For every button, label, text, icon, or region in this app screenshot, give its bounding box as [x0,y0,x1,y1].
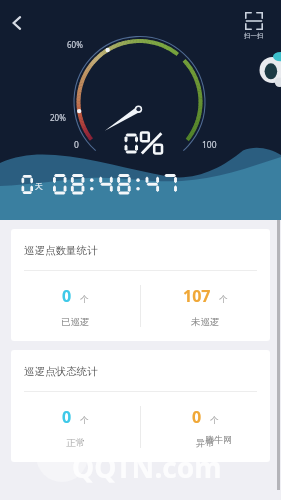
staticText: 扫一扫 [244,32,264,40]
staticText: 20% [50,112,66,123]
staticText: 60% [67,39,83,50]
staticText: 100 [202,139,217,151]
staticText: 0 [192,406,202,428]
staticText: 正常 [66,437,85,449]
staticText: 个 [80,294,89,305]
staticText: 已巡逻 [61,316,90,328]
button[interactable]: 巡逻点数量统计 [11,229,270,341]
staticText: 0 [62,285,72,307]
button[interactable]: 扫一扫 [242,12,266,40]
staticText: 腾牛网 [205,434,232,445]
staticText: QQTN.com [72,448,222,486]
staticText: 巡逻点数量统计 [24,244,98,257]
staticText: 巡逻点状态统计 [24,365,98,378]
staticText: 107 [183,285,211,307]
staticText: 天 [35,181,43,191]
button[interactable]: Back [3,9,31,37]
staticText: 个 [219,294,228,305]
staticText: 未巡逻 [191,316,220,328]
button[interactable]: 巡逻点状态统计 [11,350,270,462]
staticText: 0 [62,406,72,428]
staticText: 个 [210,415,219,426]
staticText: 个 [80,415,89,426]
staticText: 0 [74,139,79,151]
staticText: 异常 [196,437,215,449]
